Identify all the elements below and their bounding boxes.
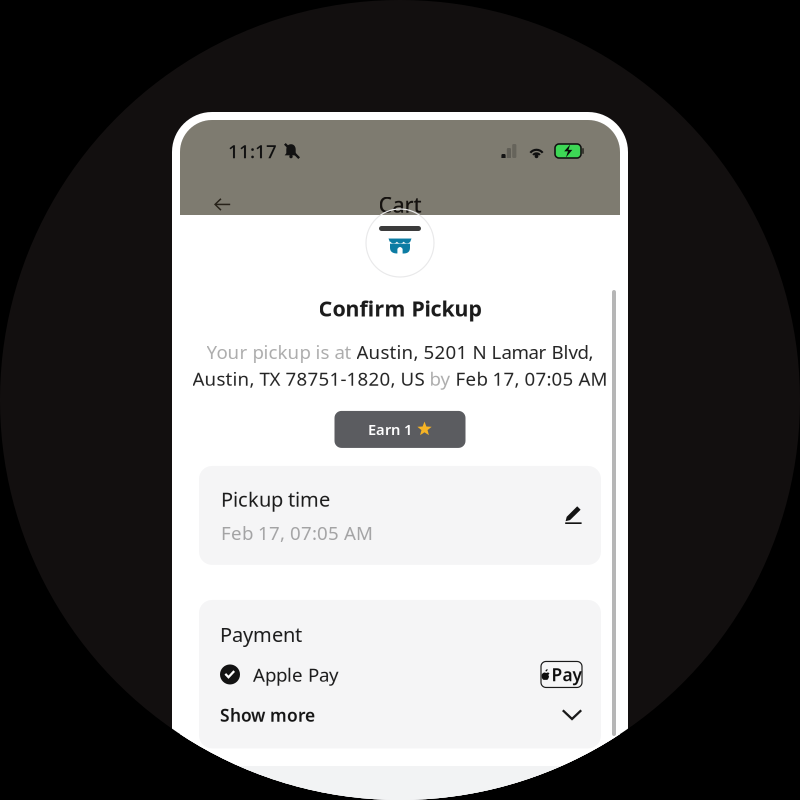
staticText: Feb 17, 07:05 AM: [455, 366, 607, 391]
staticText: 11:17: [228, 139, 277, 163]
staticText: Confirm Pickup: [318, 294, 481, 322]
staticText: Austin, TX 78751-1820, US: [192, 366, 429, 391]
staticText: Show more: [220, 703, 315, 726]
staticText: Pickup time: [221, 486, 330, 512]
staticText: by: [429, 366, 455, 391]
staticText: Austin, 5201 N Lamar Blvd,: [356, 339, 593, 364]
staticText: Cart: [378, 190, 421, 219]
button[interactable]: Apple Pay: [541, 661, 582, 687]
button[interactable]: Back: [206, 190, 239, 219]
staticText: Apple Pay: [253, 662, 339, 687]
staticText: Feb 17, 07:05 AM: [221, 520, 373, 545]
button[interactable]: Earn 1: [334, 411, 465, 448]
staticText: Pay: [551, 663, 581, 686]
button[interactable]: Show more: [220, 703, 582, 726]
button[interactable]: Edit pickup time: [565, 506, 582, 525]
staticText: Earn 1: [368, 420, 412, 439]
staticText: Your pickup is at: [206, 339, 356, 364]
staticText: Payment: [220, 621, 302, 647]
